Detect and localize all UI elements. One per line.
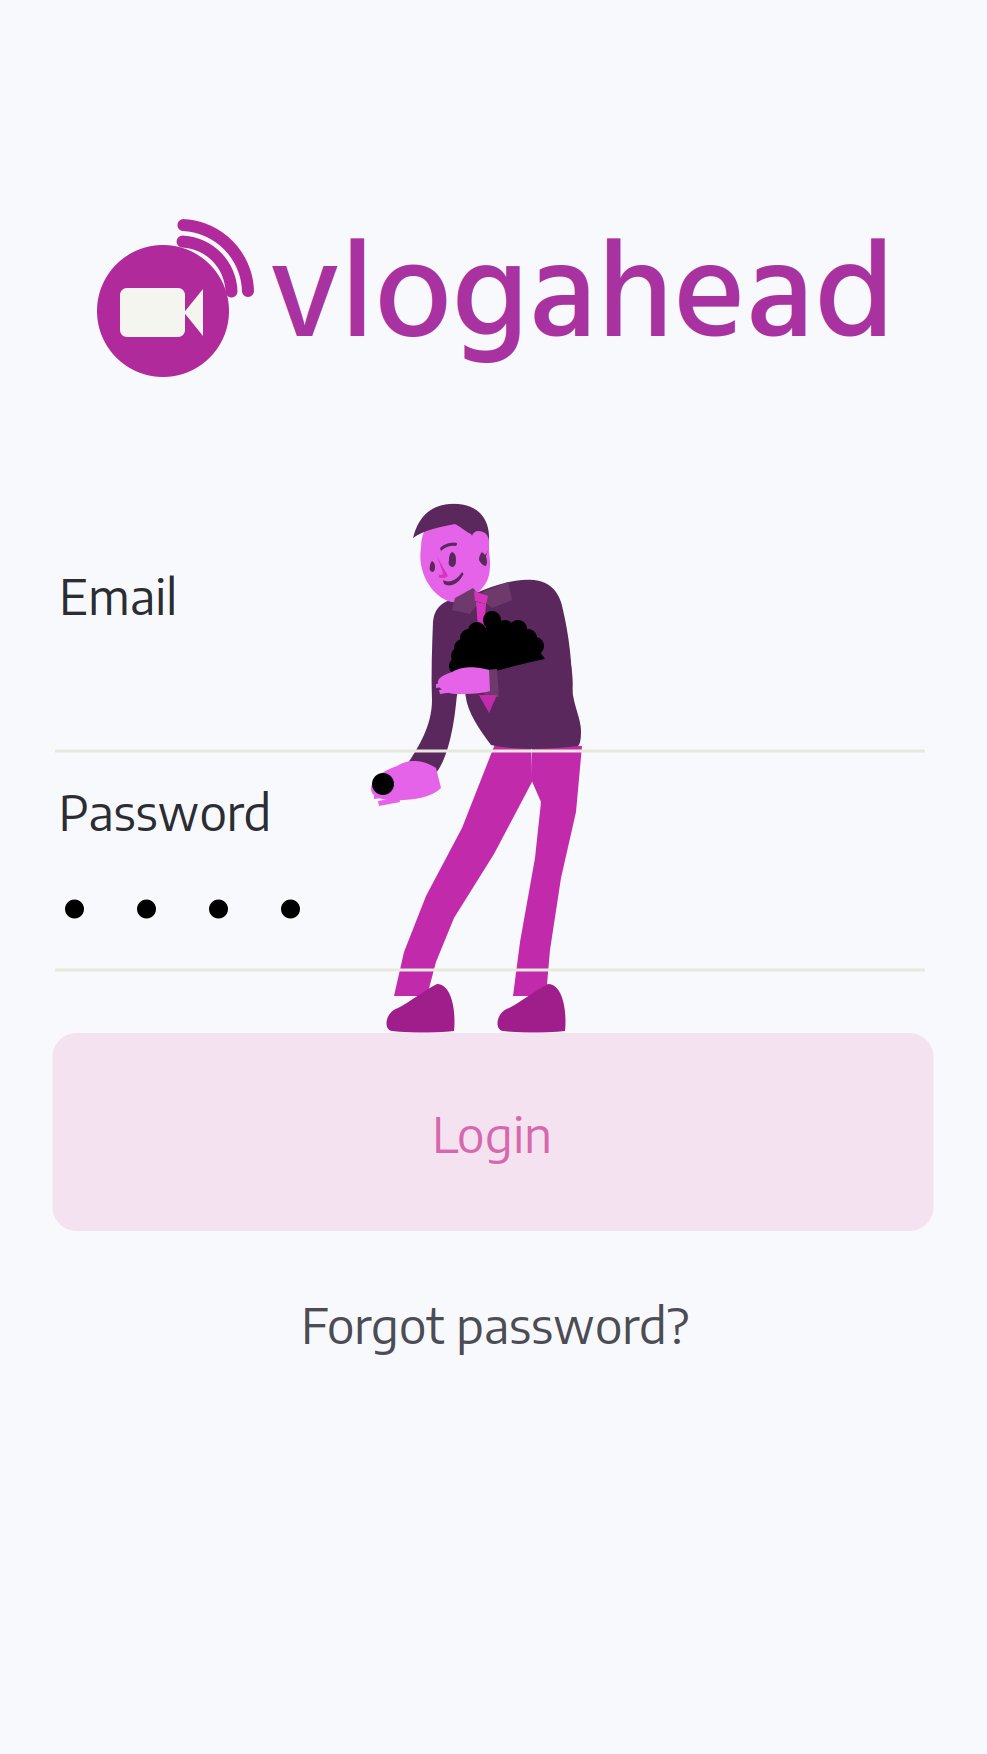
staticText: vlogahead [269, 191, 894, 411]
button[interactable]: Login [52, 1033, 933, 1231]
staticText: Email [59, 564, 177, 626]
staticText: Forgot password? [301, 1293, 689, 1355]
button[interactable]: Forgot password? [215, 1279, 775, 1369]
staticText: Password [58, 780, 271, 842]
staticText: Login [432, 1102, 552, 1164]
